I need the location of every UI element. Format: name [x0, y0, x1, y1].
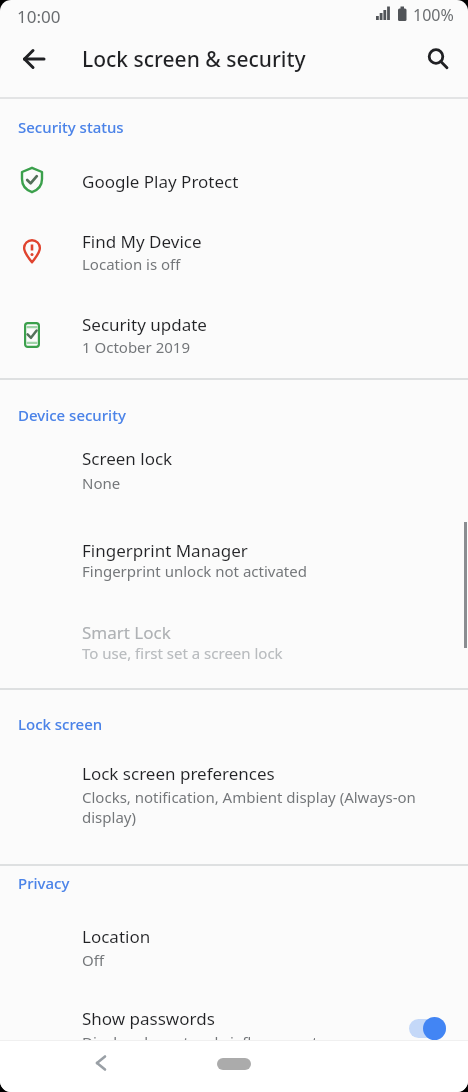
staticText: Lock screen preferences	[82, 762, 275, 785]
staticText: Fingerprint unlock not activated	[82, 561, 307, 581]
staticText: 100%	[413, 4, 454, 26]
staticText: Clocks, notification, Ambient display (A…	[82, 787, 416, 807]
button[interactable]: Screen lock	[0, 428, 468, 518]
staticText: 10:00	[17, 5, 61, 28]
staticText: Lock screen & security	[82, 45, 306, 74]
button[interactable]: Lock screen preferences	[0, 744, 468, 862]
button[interactable]: Location	[0, 905, 468, 985]
staticText: Display characters briefly as you type	[82, 1032, 344, 1052]
staticText: Smart Lock	[82, 621, 171, 644]
button[interactable]	[416, 35, 460, 83]
staticText: Off	[82, 950, 105, 970]
button[interactable]: Security update	[0, 294, 468, 378]
staticText: Location	[82, 925, 151, 948]
button[interactable]: Fingerprint Manager	[0, 518, 468, 606]
button[interactable]: Find My Device	[0, 212, 468, 294]
staticText: Security update	[82, 313, 207, 336]
staticText: Lock screen	[18, 714, 103, 734]
staticText: None	[82, 473, 121, 493]
staticText: Google Play Protect	[82, 170, 239, 193]
staticText: To use, first set a screen lock	[82, 643, 283, 663]
staticText: Security status	[18, 117, 124, 137]
button[interactable]	[79, 1041, 123, 1085]
button[interactable]: Show passwords	[0, 985, 468, 1040]
staticText: 1 October 2019	[82, 337, 190, 357]
staticText: display)	[82, 807, 136, 827]
button[interactable]: Smart Lock	[0, 606, 468, 686]
staticText: Find My Device	[82, 230, 202, 253]
staticText: Fingerprint Manager	[82, 539, 248, 562]
staticText: Screen lock	[82, 447, 173, 470]
button[interactable]: Google Play Protect	[0, 148, 468, 212]
button[interactable]	[217, 1058, 251, 1070]
button[interactable]	[10, 35, 58, 83]
staticText: Show passwords	[82, 1007, 215, 1030]
staticText: Location is off	[82, 254, 181, 274]
staticText: Privacy	[18, 873, 70, 893]
staticText: Device security	[18, 405, 126, 425]
